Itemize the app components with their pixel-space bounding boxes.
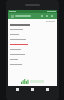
button[interactable]: Navigate up (10, 14, 14, 18)
button[interactable] (10, 49, 55, 54)
button[interactable] (10, 54, 55, 59)
button[interactable]: Action (50, 14, 54, 18)
button[interactable]: Action (40, 14, 44, 18)
button[interactable] (10, 59, 55, 64)
button[interactable] (10, 39, 55, 44)
button[interactable] (10, 64, 55, 69)
button[interactable] (10, 44, 55, 49)
button[interactable] (10, 34, 55, 39)
button[interactable] (10, 24, 55, 29)
button[interactable]: Action (45, 14, 49, 18)
button[interactable] (10, 29, 55, 34)
